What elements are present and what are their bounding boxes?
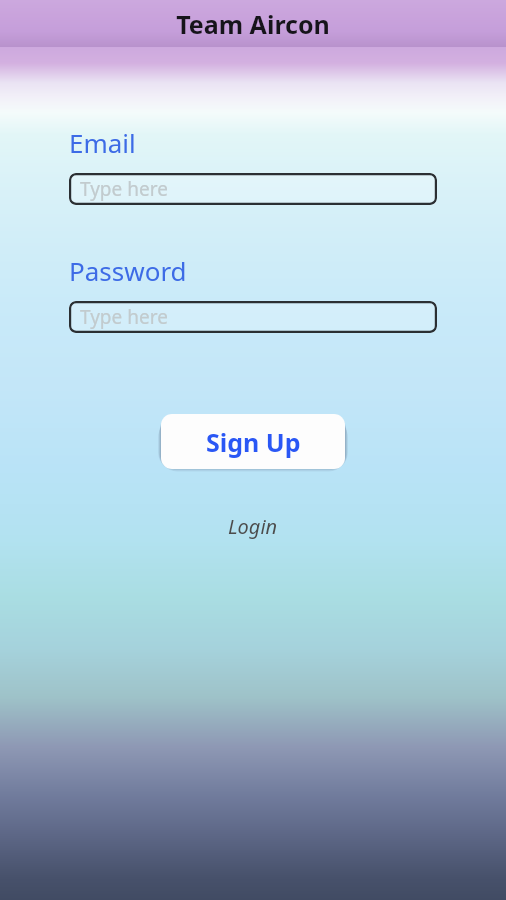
staticText: Email [69, 125, 136, 160]
staticText: Type here [80, 304, 168, 330]
button[interactable]: Login [218, 509, 288, 544]
staticText: Sign Up [206, 425, 301, 459]
button[interactable]: Type here [69, 301, 437, 333]
staticText: Team Aircon [176, 7, 330, 41]
button[interactable]: Type here [69, 173, 437, 205]
staticText: Type here [80, 176, 168, 202]
button[interactable]: Sign Up [161, 414, 345, 469]
staticText: Login [228, 513, 278, 540]
staticText: Password [69, 253, 187, 288]
